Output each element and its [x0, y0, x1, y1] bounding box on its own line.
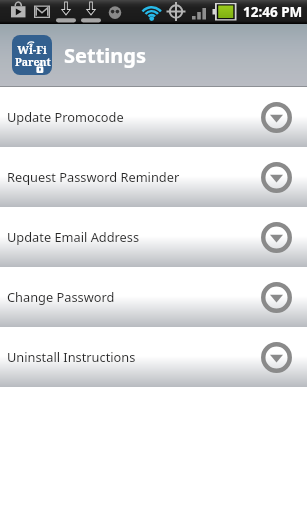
other: Expand: [261, 222, 292, 253]
staticText: Update Promocode: [7, 108, 261, 125]
other: Expand: [261, 162, 292, 193]
staticText: Request Password Reminder: [7, 168, 261, 185]
staticText: Change Password: [7, 288, 261, 305]
staticText: Parent: [15, 55, 51, 69]
staticText: Uninstall Instructions: [7, 348, 261, 365]
staticText: Update Email Address: [7, 228, 261, 245]
button[interactable]: Request Password Reminder: [0, 147, 307, 207]
button[interactable]: Update Email Address: [0, 207, 307, 267]
button[interactable]: Update Promocode: [0, 87, 307, 147]
other: Expand: [261, 102, 292, 133]
other: Expand: [261, 282, 292, 313]
staticText: 12:46 PM: [243, 3, 303, 21]
button[interactable]: Change Password: [0, 267, 307, 327]
other: Expand: [261, 342, 292, 373]
button[interactable]: Uninstall Instructions: [0, 327, 307, 387]
staticText: Settings: [64, 42, 146, 69]
staticText: Wi-Fi: [17, 42, 47, 57]
